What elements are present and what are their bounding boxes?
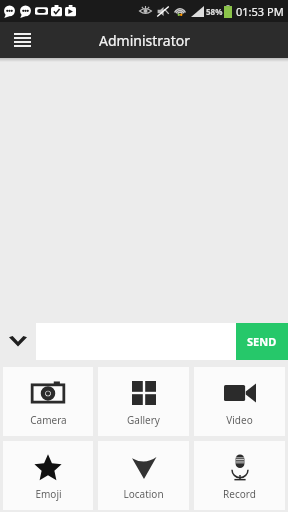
button[interactable]: Video — [194, 367, 285, 436]
staticText: Video — [226, 413, 253, 427]
button[interactable]: Gallery — [98, 367, 189, 436]
button[interactable]: Location — [98, 441, 189, 510]
button[interactable]: Hide attachments — [0, 317, 36, 365]
staticText: Administrator — [99, 31, 190, 50]
button[interactable]: Open navigation menu — [0, 22, 44, 58]
staticText: SEND — [247, 334, 277, 349]
staticText: Gallery — [127, 413, 160, 427]
staticText: 01:53 PM — [236, 4, 284, 19]
button[interactable]: SEND — [236, 323, 288, 360]
button[interactable]: Record — [194, 441, 285, 510]
staticText: Emoji — [35, 487, 62, 501]
staticText: Camera — [30, 413, 67, 427]
button[interactable]: Camera — [3, 367, 93, 436]
staticText: Location — [123, 487, 164, 501]
button[interactable]: Emoji — [3, 441, 93, 510]
staticText: 58% — [206, 6, 223, 17]
staticText: Record — [223, 487, 256, 501]
